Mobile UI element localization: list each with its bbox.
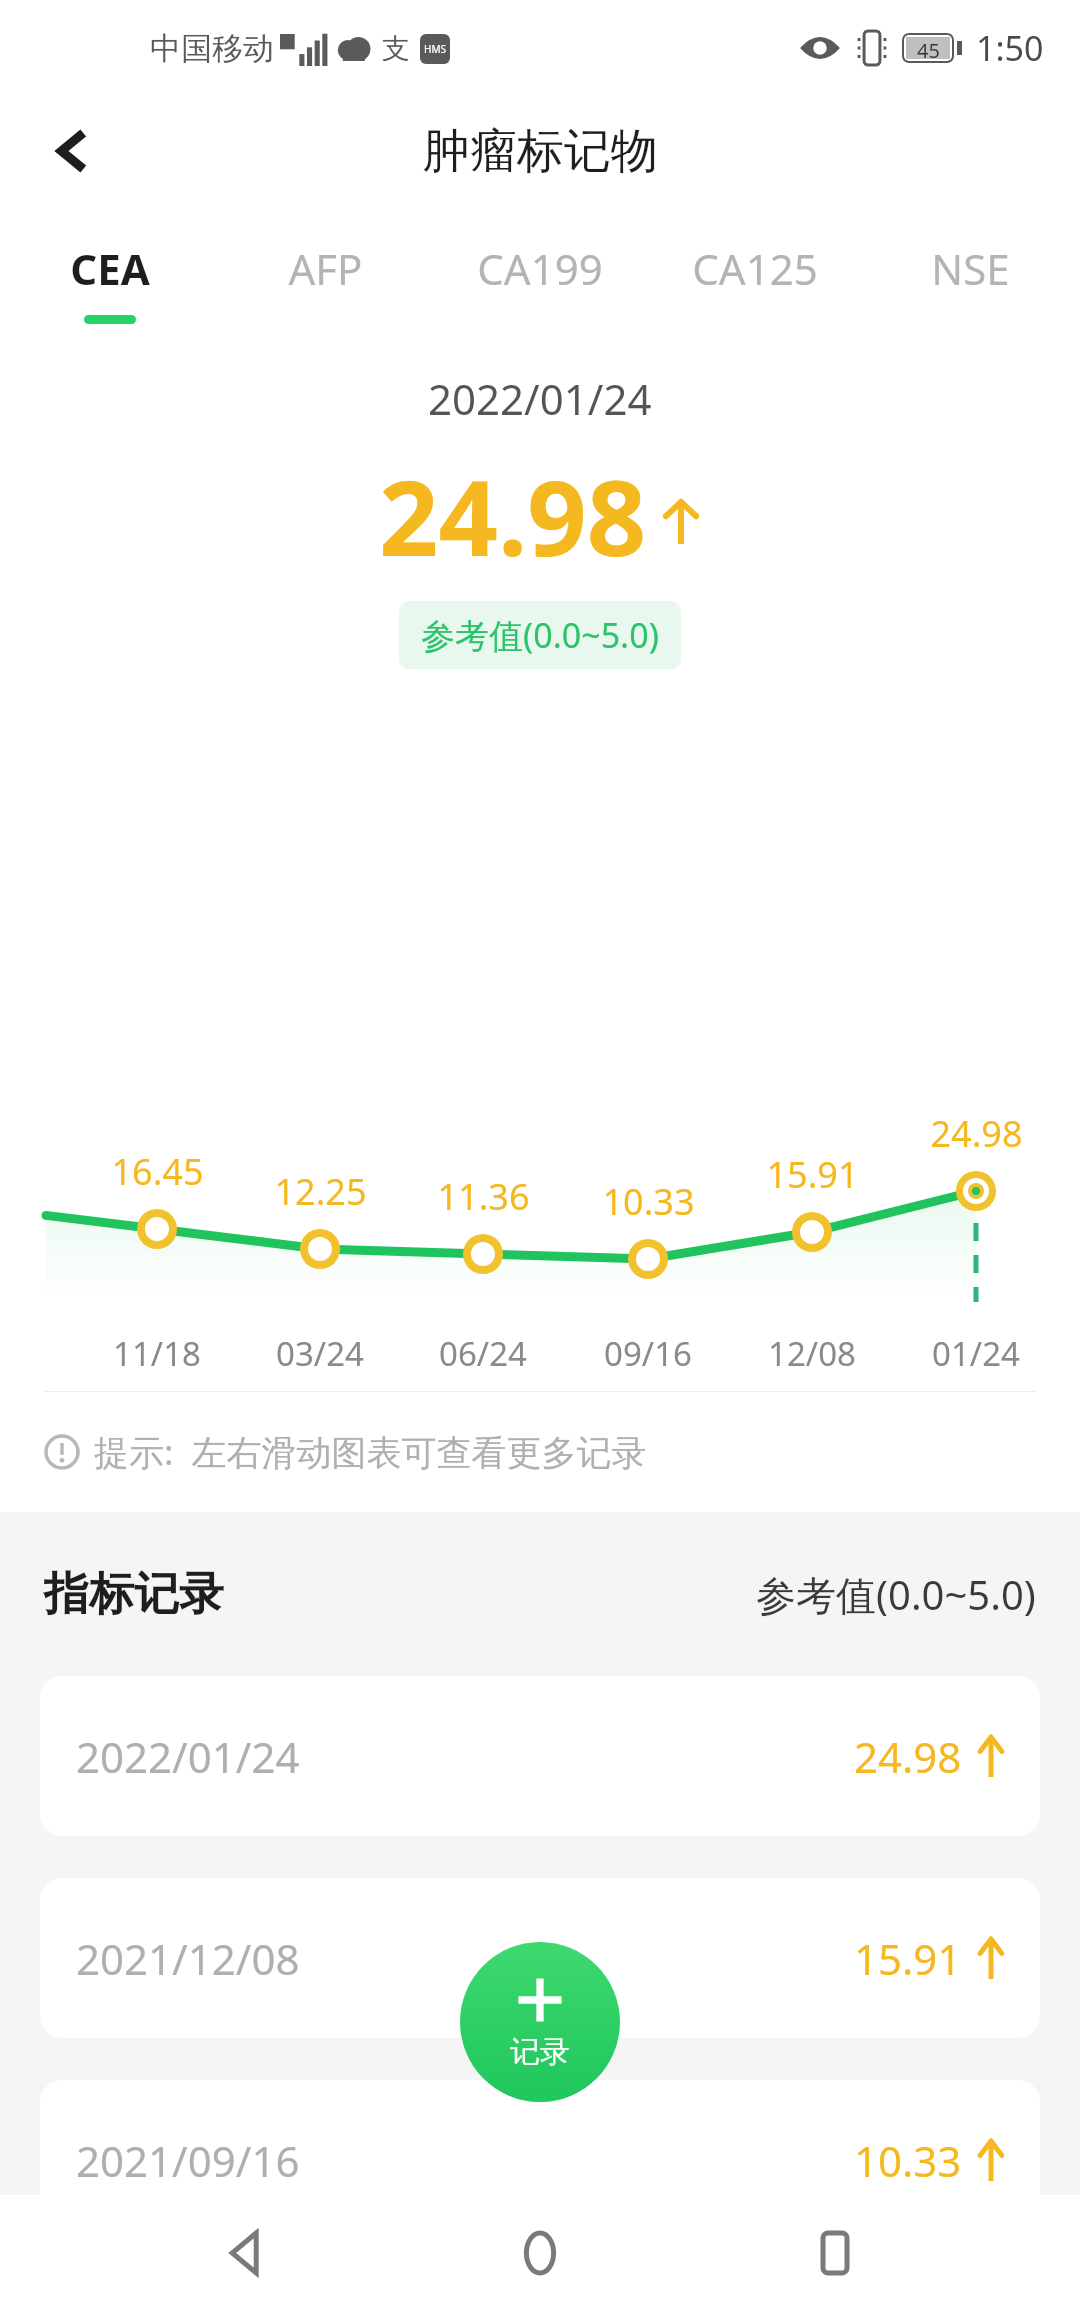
staticText: 24.98 [930,1109,1023,1158]
button[interactable]: CA125 [669,206,841,315]
staticText: 06/24 [439,1331,527,1376]
staticText: CA125 [692,240,818,297]
staticText: 1:50 [976,25,1044,71]
button[interactable]: NSE [884,206,1056,315]
staticText: 15.91 [854,1930,962,1987]
staticText: 2021/12/08 [76,1930,300,1987]
button[interactable]: CA199 [454,206,626,315]
staticText: 支 [382,31,410,66]
staticText: 03/24 [276,1331,364,1376]
staticText: 参考值(0.0~5.0) [421,612,659,658]
staticText: 提示: 左右滑动图表可查看更多记录 [94,1428,647,1476]
staticText: 24.98 [854,1728,962,1785]
button[interactable]: 2021/12/08 [40,1878,1040,2038]
staticText: 09/16 [604,1331,692,1376]
staticText: 15.91 [766,1150,859,1199]
staticText: 01/24 [932,1331,1020,1376]
staticText: 11.36 [437,1172,530,1221]
staticText: 10.33 [602,1177,695,1226]
button[interactable]: 记录 [460,1942,620,2102]
staticText: 10.33 [854,2132,962,2189]
staticText: 2022/01/24 [428,370,652,427]
staticText: 指标记录 [44,1566,224,1623]
staticText: 参考值(0.0~5.0) [756,1567,1036,1622]
staticText: CA199 [477,240,603,297]
staticText: AFP [288,240,363,297]
staticText: 24.98 [379,445,647,587]
staticText: 12.25 [274,1167,367,1216]
staticText: 记录 [510,2033,570,2071]
button[interactable]: 主页 [495,2208,585,2298]
staticText: HMS [424,42,446,56]
button[interactable]: 2021/09/16 [40,2080,1040,2240]
staticText: 12/08 [768,1331,856,1376]
button[interactable]: 最近任务 [790,2208,880,2298]
button[interactable]: CEA [24,206,196,324]
button[interactable]: 2022/01/24 [40,1676,1040,1836]
staticText: 2021/09/16 [76,2132,300,2189]
staticText: 2022/01/24 [76,1728,300,1785]
button[interactable]: 返回 [200,2208,290,2298]
staticText: CEA [70,240,150,297]
staticText: 45 [917,37,940,59]
button[interactable]: AFP [239,206,411,315]
staticText: 中国移动 [150,29,274,68]
staticText: 16.45 [111,1147,204,1196]
button[interactable]: 返回 [30,110,112,192]
staticText: 肿瘤标记物 [423,122,658,181]
staticText: NSE [931,240,1010,297]
staticText: 11/18 [113,1331,201,1376]
